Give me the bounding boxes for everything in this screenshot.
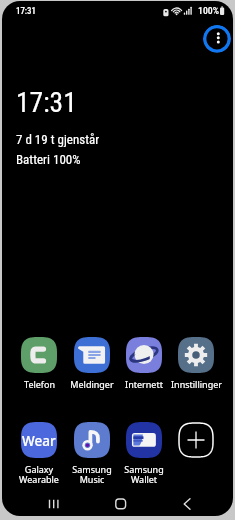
staticText: Internett — [125, 378, 163, 390]
staticText: 17:31 — [16, 6, 36, 16]
button[interactable]: Internett — [118, 337, 170, 390]
button[interactable]: Samsung Wallet — [118, 422, 170, 486]
button[interactable]: Meldinger — [66, 337, 118, 390]
button[interactable]: More options — [203, 25, 231, 53]
staticText: Innstillinger — [171, 378, 222, 390]
staticText: Samsung Wallet — [124, 463, 164, 486]
staticText: Meldinger — [70, 378, 114, 390]
button[interactable]: Wear — [13, 422, 65, 486]
button[interactable]: Telefon — [13, 337, 65, 390]
staticText: Batteri 100% — [16, 152, 81, 167]
staticText: Samsung Music — [72, 463, 112, 486]
staticText: Galaxy Wearable — [19, 463, 59, 486]
staticText: 7 d 19 t gjenstår — [16, 132, 100, 147]
staticText: Telefon — [24, 378, 55, 390]
button[interactable]: Add app — [170, 422, 222, 458]
button[interactable]: Innstillinger — [170, 337, 222, 390]
button[interactable]: Samsung Music — [66, 422, 118, 486]
staticText: Wear — [22, 432, 56, 450]
staticText: 17:31 — [16, 86, 77, 118]
staticText: 100% — [198, 5, 219, 16]
